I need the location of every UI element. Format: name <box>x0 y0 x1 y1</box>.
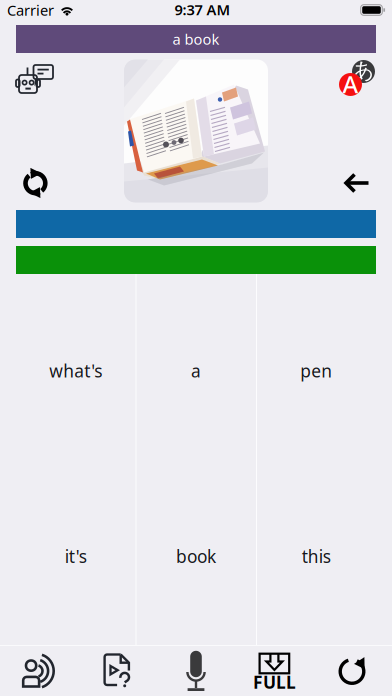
button[interactable]: Quiz <box>78 646 157 696</box>
button[interactable]: Chatbot <box>16 64 53 95</box>
staticText: pen <box>300 359 332 382</box>
staticText: 9:37 AM <box>174 0 230 19</box>
button[interactable]: book <box>136 459 256 645</box>
button[interactable]: Swap word order <box>21 167 50 198</box>
button[interactable] <box>0 246 392 274</box>
button[interactable]: Listen <box>0 646 78 696</box>
button[interactable]: what's <box>15 274 136 459</box>
button[interactable]: a book <box>0 25 392 53</box>
button[interactable]: this <box>256 459 376 645</box>
button[interactable]: Back <box>343 170 371 196</box>
button[interactable]: Refresh <box>314 646 392 696</box>
button[interactable]: Translate <box>339 60 375 96</box>
button[interactable]: Full download <box>235 646 314 696</box>
button[interactable]: it's <box>15 459 136 645</box>
staticText: a <box>191 359 201 382</box>
button[interactable] <box>0 210 392 238</box>
staticText: this <box>302 545 331 568</box>
button[interactable]: a <box>136 274 256 459</box>
staticText: FULL <box>253 670 296 693</box>
staticText: it's <box>65 545 87 568</box>
staticText: book <box>176 545 216 568</box>
staticText: a book <box>172 29 219 49</box>
staticText: A <box>342 68 358 100</box>
staticText: what's <box>49 359 102 382</box>
button[interactable]: pen <box>256 274 376 459</box>
staticText: Carrier <box>7 0 54 20</box>
button[interactable]: Record <box>157 646 235 696</box>
staticText: あ <box>352 57 374 84</box>
